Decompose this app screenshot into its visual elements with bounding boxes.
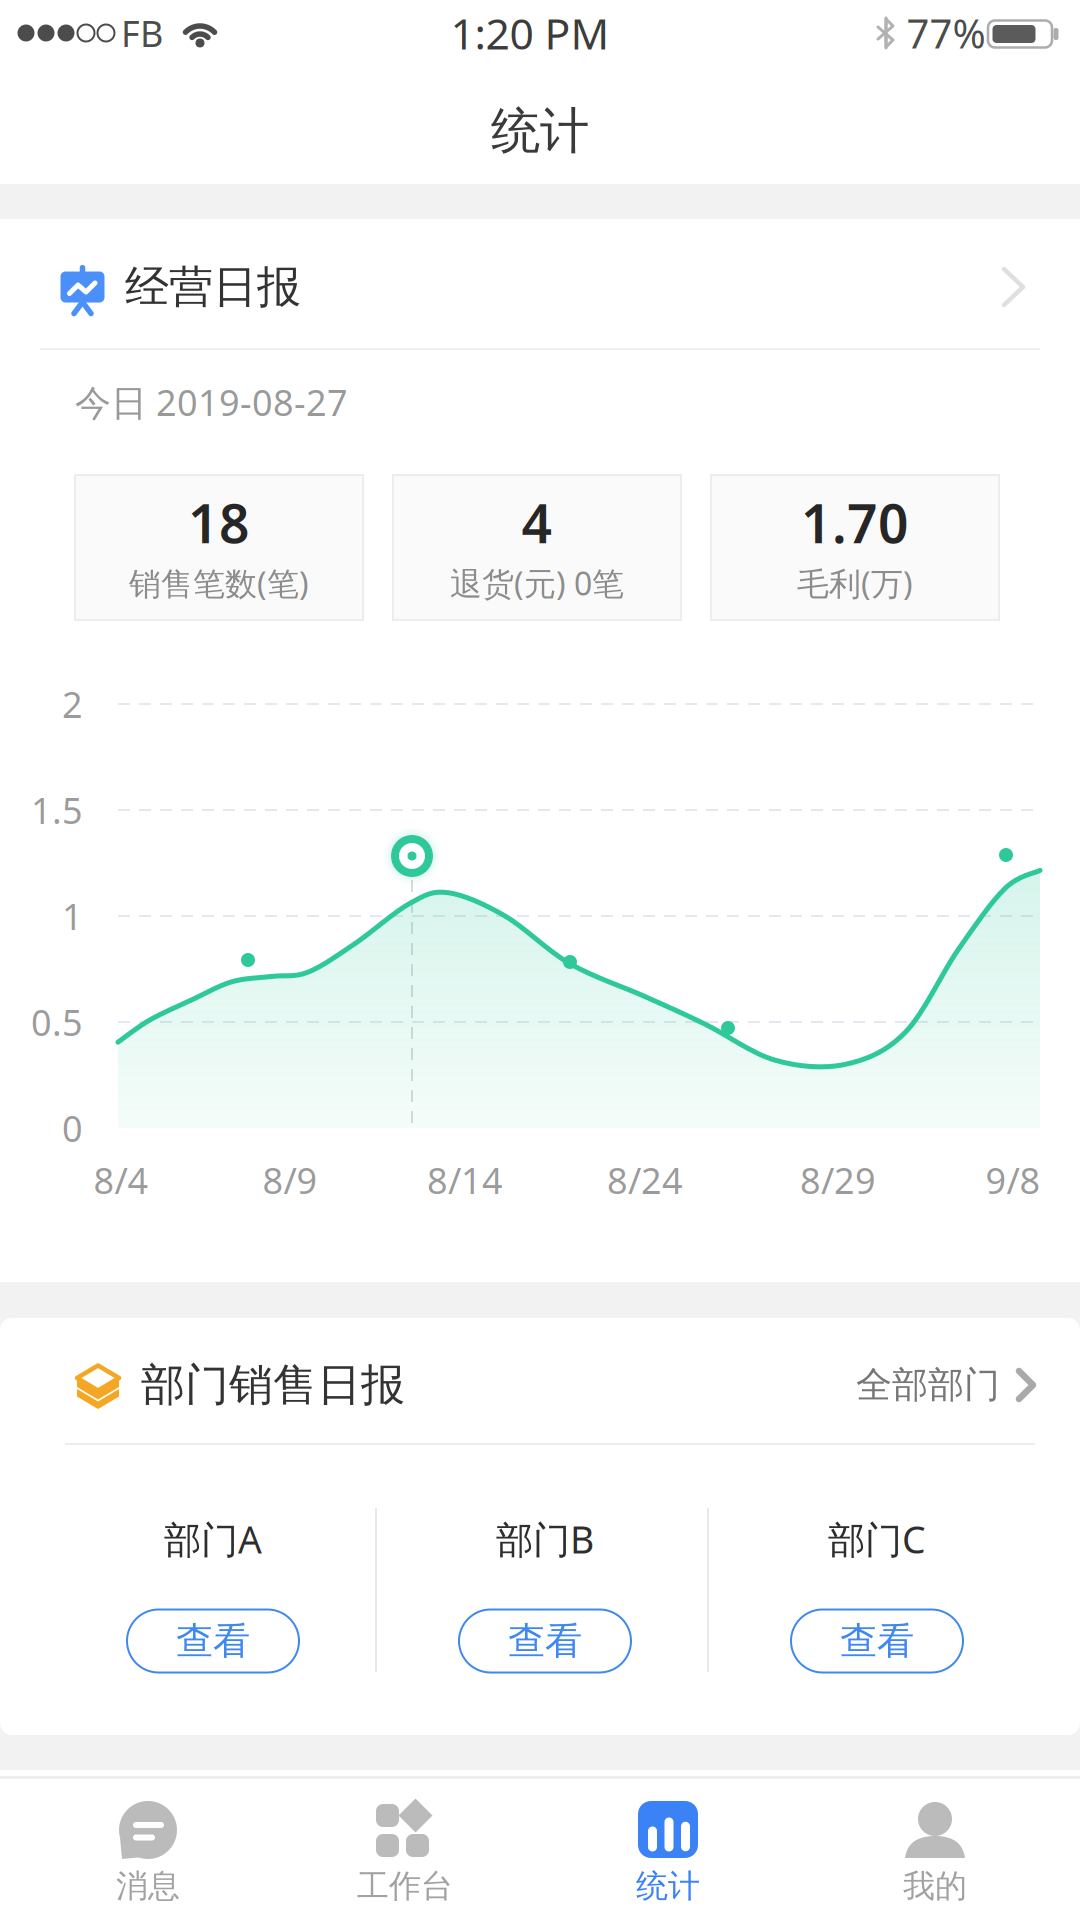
- staticText: 查看: [176, 1618, 250, 1664]
- button[interactable]: 工作台: [295, 1778, 515, 1918]
- staticText: 部门C: [828, 1514, 926, 1564]
- staticText: 部门B: [496, 1514, 594, 1564]
- staticText: 2: [62, 680, 83, 728]
- staticText: 1: [62, 892, 83, 940]
- staticText: 8/9: [262, 1156, 317, 1204]
- staticText: 消息: [116, 1866, 180, 1906]
- staticText: 统计: [636, 1866, 700, 1906]
- staticText: 1.5: [31, 786, 83, 834]
- staticText: 1:20 PM: [450, 5, 609, 61]
- staticText: 0: [62, 1104, 83, 1152]
- staticText: 9/8: [985, 1156, 1040, 1204]
- staticText: 8/4: [93, 1156, 148, 1204]
- staticText: 全部部门: [856, 1363, 1000, 1407]
- staticText: 1.70: [801, 487, 909, 558]
- button[interactable]: 消息: [38, 1778, 258, 1918]
- staticText: 今日 2019-08-27: [75, 378, 348, 426]
- staticText: 查看: [840, 1618, 914, 1664]
- button[interactable]: 经营日报: [40, 242, 1040, 332]
- button[interactable]: 查看: [127, 1609, 299, 1672]
- button[interactable]: 查看: [459, 1609, 631, 1672]
- staticText: 工作台: [357, 1866, 453, 1906]
- staticText: 退货(元) 0笔: [450, 562, 624, 604]
- staticText: 销售笔数(笔): [129, 562, 309, 604]
- staticText: 查看: [508, 1618, 582, 1664]
- staticText: 0.5: [31, 998, 83, 1046]
- staticText: 8/14: [427, 1156, 503, 1204]
- staticText: 经营日报: [125, 260, 301, 314]
- button[interactable]: 统计: [558, 1778, 778, 1918]
- button[interactable]: 查看: [791, 1609, 963, 1672]
- staticText: 我的: [903, 1866, 967, 1906]
- staticText: 8/29: [800, 1156, 876, 1204]
- staticText: 统计: [491, 101, 589, 161]
- staticText: 18: [188, 487, 250, 558]
- staticText: 部门A: [164, 1514, 262, 1564]
- button[interactable]: 我的: [825, 1778, 1045, 1918]
- staticText: 4: [521, 487, 552, 558]
- staticText: FB: [121, 9, 163, 57]
- button[interactable]: 部门销售日报: [40, 1339, 1040, 1431]
- staticText: 部门销售日报: [141, 1358, 405, 1412]
- staticText: 8/24: [607, 1156, 683, 1204]
- staticText: 毛利(万): [797, 562, 913, 604]
- staticText: 77%: [906, 6, 985, 59]
